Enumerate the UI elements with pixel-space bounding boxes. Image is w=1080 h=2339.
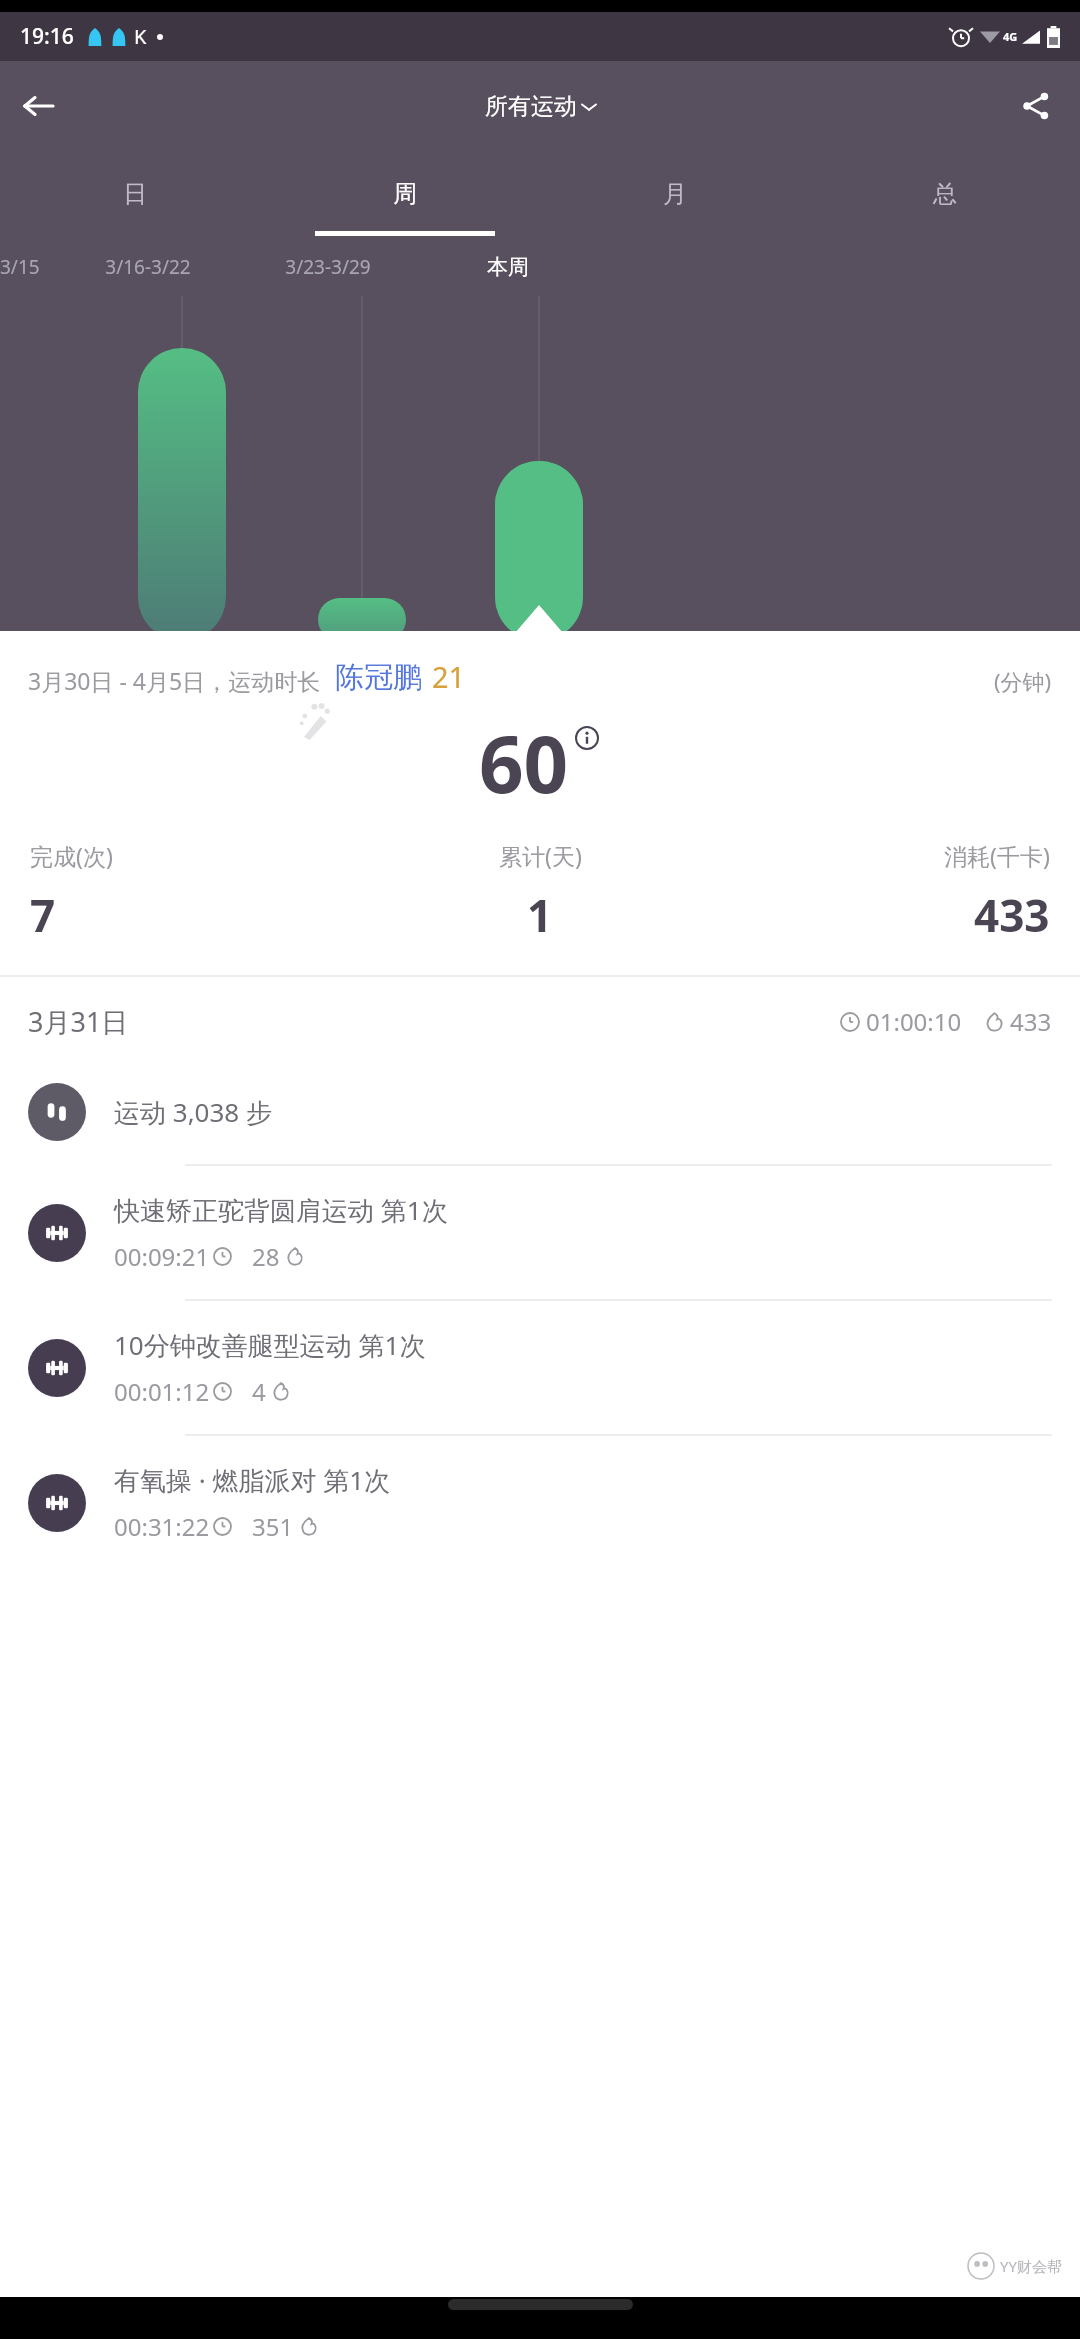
- staticText: K: [134, 23, 147, 50]
- button[interactable]: 总: [810, 151, 1080, 236]
- staticText: 21: [432, 657, 466, 696]
- staticText: 01:00:10: [866, 1005, 962, 1038]
- staticText: 完成(次): [30, 840, 113, 871]
- staticText: 运动 3,038 步: [114, 1094, 272, 1130]
- staticText: 3/15: [0, 254, 58, 280]
- staticText: 00:01:12: [114, 1375, 210, 1408]
- staticText: (分钟): [994, 666, 1052, 696]
- staticText: 所有运动: [485, 92, 577, 121]
- button[interactable]: Back: [8, 76, 68, 136]
- staticText: 7: [30, 885, 56, 945]
- staticText: 10分钟改善腿型运动 第1次: [114, 1327, 426, 1363]
- staticText: 月: [663, 179, 687, 209]
- button[interactable]: 日: [0, 151, 270, 236]
- staticText: 本周: [418, 254, 598, 280]
- staticText: 陈冠鹏: [335, 659, 422, 696]
- staticText: 433: [974, 885, 1050, 945]
- staticText: 总: [933, 179, 957, 209]
- staticText: YY财会帮: [1000, 2256, 1062, 2276]
- staticText: 1: [527, 885, 553, 945]
- staticText: 日: [123, 179, 147, 209]
- staticText: 累计(天): [499, 840, 582, 871]
- button[interactable]: 月: [540, 151, 810, 236]
- staticText: 19:16: [20, 22, 74, 51]
- button[interactable]: 有氧操 · 燃脂派对 第1次: [0, 1436, 1080, 1569]
- staticText: 4G: [1003, 29, 1018, 44]
- staticText: 00:09:21: [114, 1240, 210, 1273]
- staticText: 有氧操 · 燃脂派对 第1次: [114, 1462, 391, 1498]
- button[interactable]: 运动 3,038 步: [0, 1060, 1080, 1164]
- staticText: 00:31:22: [114, 1510, 210, 1543]
- button[interactable]: 周: [270, 151, 540, 236]
- staticText: 3/23-3/29: [238, 254, 418, 280]
- staticText: 351: [252, 1510, 294, 1543]
- staticText: 3/16-3/22: [58, 254, 238, 280]
- staticText: 60: [479, 710, 569, 816]
- button[interactable]: 快速矫正驼背圆肩运动 第1次: [0, 1166, 1080, 1299]
- staticText: 433: [1010, 1005, 1052, 1038]
- staticText: 28: [252, 1240, 280, 1273]
- button[interactable]: 10分钟改善腿型运动 第1次: [0, 1301, 1080, 1434]
- button[interactable]: 所有运动: [485, 92, 596, 121]
- staticText: 3月31日: [28, 1003, 129, 1040]
- button[interactable]: Share: [1006, 76, 1066, 136]
- button[interactable]: Info: [573, 724, 601, 752]
- staticText: 消耗(千卡): [944, 840, 1050, 871]
- staticText: 3月30日 - 4月5日，运动时长: [28, 665, 321, 696]
- staticText: 4: [252, 1375, 266, 1408]
- staticText: 周: [393, 179, 417, 209]
- staticText: 快速矫正驼背圆肩运动 第1次: [114, 1192, 448, 1228]
